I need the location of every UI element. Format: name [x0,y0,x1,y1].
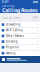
staticText: Edit [33,16,38,19]
staticText: Settings [4,4,15,7]
button[interactable]: Blocking [0,39,40,45]
staticText: Waiting [6,51,16,55]
staticText: CALL SETTINGS [2,16,20,19]
staticText: Other Devices [6,34,24,38]
button[interactable]: Wi-Fi Calling [0,28,40,33]
staticText: 9:41 [2,0,9,4]
button[interactable]: Waiting [0,50,40,56]
button[interactable]: Respond [0,45,40,50]
staticText: ‹ [2,3,3,8]
staticText: Calling Routes [2,7,38,14]
staticText: Forwarding [6,23,21,26]
staticText: Blocking [6,40,18,43]
button[interactable]: Forwarding [0,22,40,28]
staticText: Wi-Fi Calling [6,28,23,32]
staticText: Respond [6,45,19,49]
button[interactable]: ‹ [0,4,40,7]
button[interactable]: Other Devices [0,33,40,39]
button[interactable] [0,56,40,63]
